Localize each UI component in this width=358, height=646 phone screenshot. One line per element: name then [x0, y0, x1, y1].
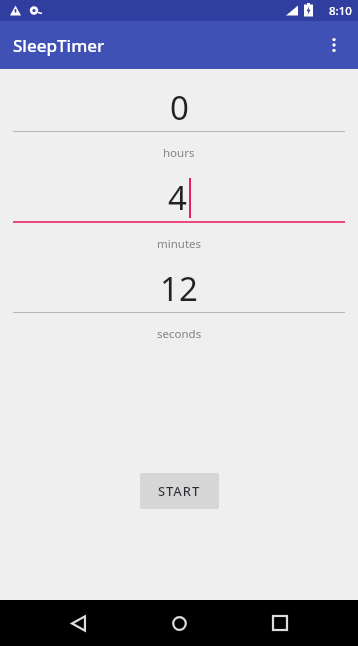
staticText: 12	[160, 266, 198, 311]
button[interactable]: Back	[55, 600, 101, 646]
button[interactable]: Home	[156, 600, 202, 646]
button[interactable]: START	[140, 473, 219, 509]
button[interactable]: Recent apps	[257, 600, 303, 646]
button[interactable]: 0	[0, 83, 358, 131]
staticText: START	[158, 482, 201, 500]
staticText: minutes	[157, 236, 202, 252]
staticText: 0	[170, 85, 189, 130]
staticText: seconds	[157, 326, 202, 342]
staticText: 8:10	[329, 3, 352, 19]
staticText: SleepTimer	[13, 34, 105, 57]
staticText: hours	[163, 145, 195, 161]
staticText: 4	[168, 175, 187, 220]
button[interactable]: 12	[0, 264, 358, 312]
button[interactable]: More options	[310, 21, 358, 69]
button[interactable]: 4	[0, 173, 358, 221]
